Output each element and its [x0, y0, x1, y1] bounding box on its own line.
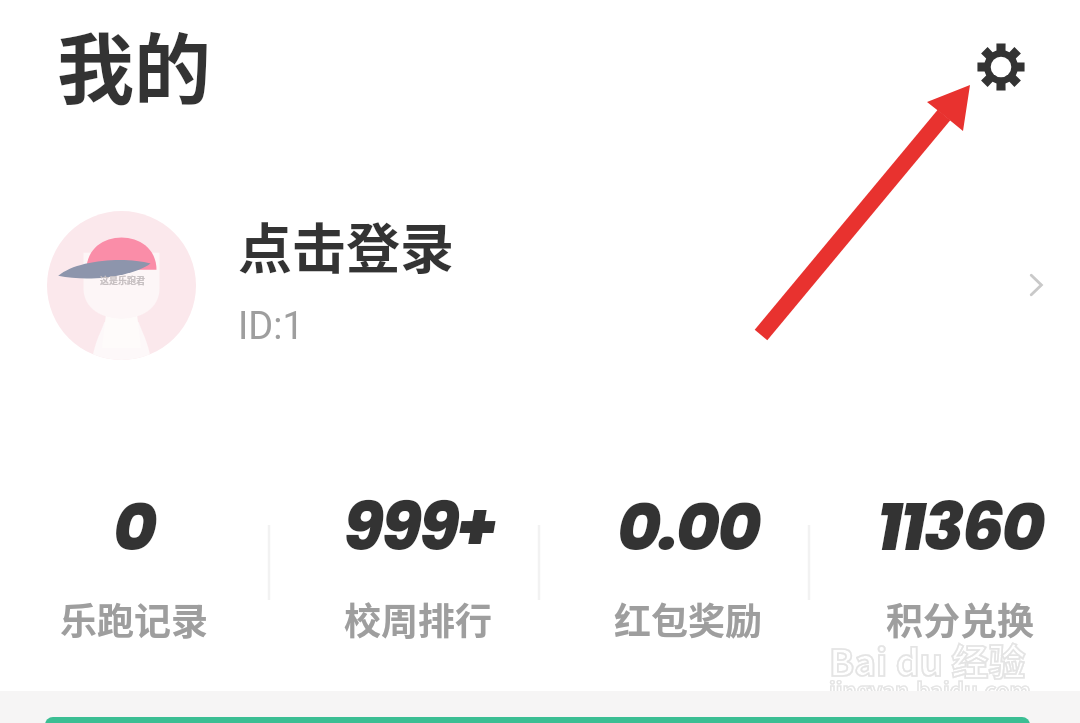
staticText: ID:1	[238, 304, 304, 349]
staticText: 我的	[57, 9, 211, 120]
button[interactable]: 0.00	[553, 472, 823, 652]
staticText: 这是乐跑君	[100, 274, 146, 287]
staticText: 校周排行	[344, 592, 492, 646]
staticText: 999+	[343, 480, 494, 574]
staticText: jingyan.baidu.com	[829, 673, 1031, 705]
button[interactable]	[45, 717, 1030, 723]
staticText: 积分兑换	[886, 592, 1034, 646]
button[interactable]: Settings	[961, 27, 1041, 107]
staticText: 红包奖励	[614, 592, 762, 646]
staticText: 0	[113, 480, 155, 574]
button[interactable]: 999+	[283, 472, 553, 652]
staticText: Bai du 经验	[829, 633, 1026, 687]
button[interactable]: 这是乐跑君	[0, 196, 1080, 368]
button[interactable]: 0	[0, 472, 269, 652]
staticText: 11360	[877, 480, 1043, 574]
staticText: 0.00	[617, 480, 759, 574]
button[interactable]: 11360	[825, 472, 1080, 652]
staticText: 乐跑记录	[60, 592, 208, 646]
staticText: 点击登录	[238, 206, 454, 284]
